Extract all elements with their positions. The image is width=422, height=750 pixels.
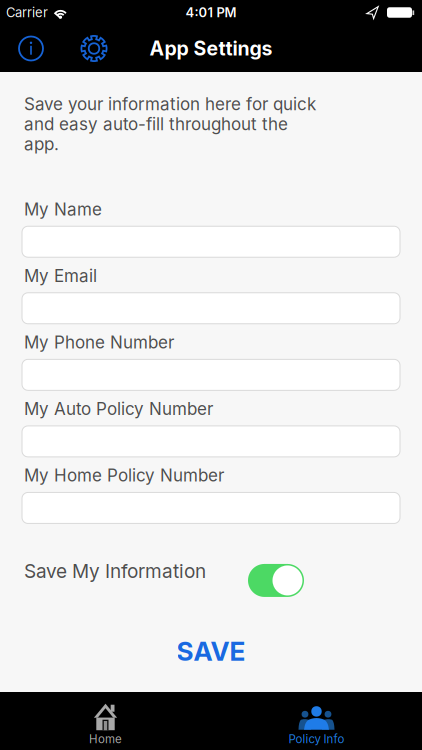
staticText: App Settings	[149, 37, 272, 60]
button[interactable]: My Email	[22, 293, 400, 324]
staticText: My Email	[24, 266, 97, 286]
button[interactable]: Policy Info	[211, 692, 422, 750]
staticText: PM	[216, 5, 236, 20]
staticText: My Auto Policy Number	[24, 399, 213, 419]
staticText: 4:01	[185, 5, 212, 20]
staticText: app.	[24, 134, 59, 154]
button[interactable]: My Home Policy Number	[22, 492, 400, 523]
button[interactable]: SAVE	[176, 636, 245, 667]
staticText: My Name	[24, 199, 102, 219]
button[interactable]: My Phone Number	[22, 359, 400, 390]
staticText: Home	[89, 732, 122, 746]
staticText: Policy Info	[288, 732, 344, 746]
button[interactable]: Info	[0, 25, 44, 71]
button[interactable]: Save My Information	[248, 560, 304, 597]
staticText: SAVE	[176, 636, 245, 667]
staticText: Save your information here for quick	[24, 94, 316, 114]
staticText: Carrier	[6, 5, 48, 20]
staticText: My Home Policy Number	[24, 465, 224, 485]
button[interactable]: Settings	[44, 25, 108, 71]
staticText: My Phone Number	[24, 332, 174, 352]
staticText: and easy auto-fill throughout the	[24, 114, 288, 134]
button[interactable]: Home	[0, 692, 211, 750]
button[interactable]: My Name	[22, 226, 400, 257]
staticText: Save My Information	[24, 560, 206, 582]
button[interactable]: My Auto Policy Number	[22, 426, 400, 457]
